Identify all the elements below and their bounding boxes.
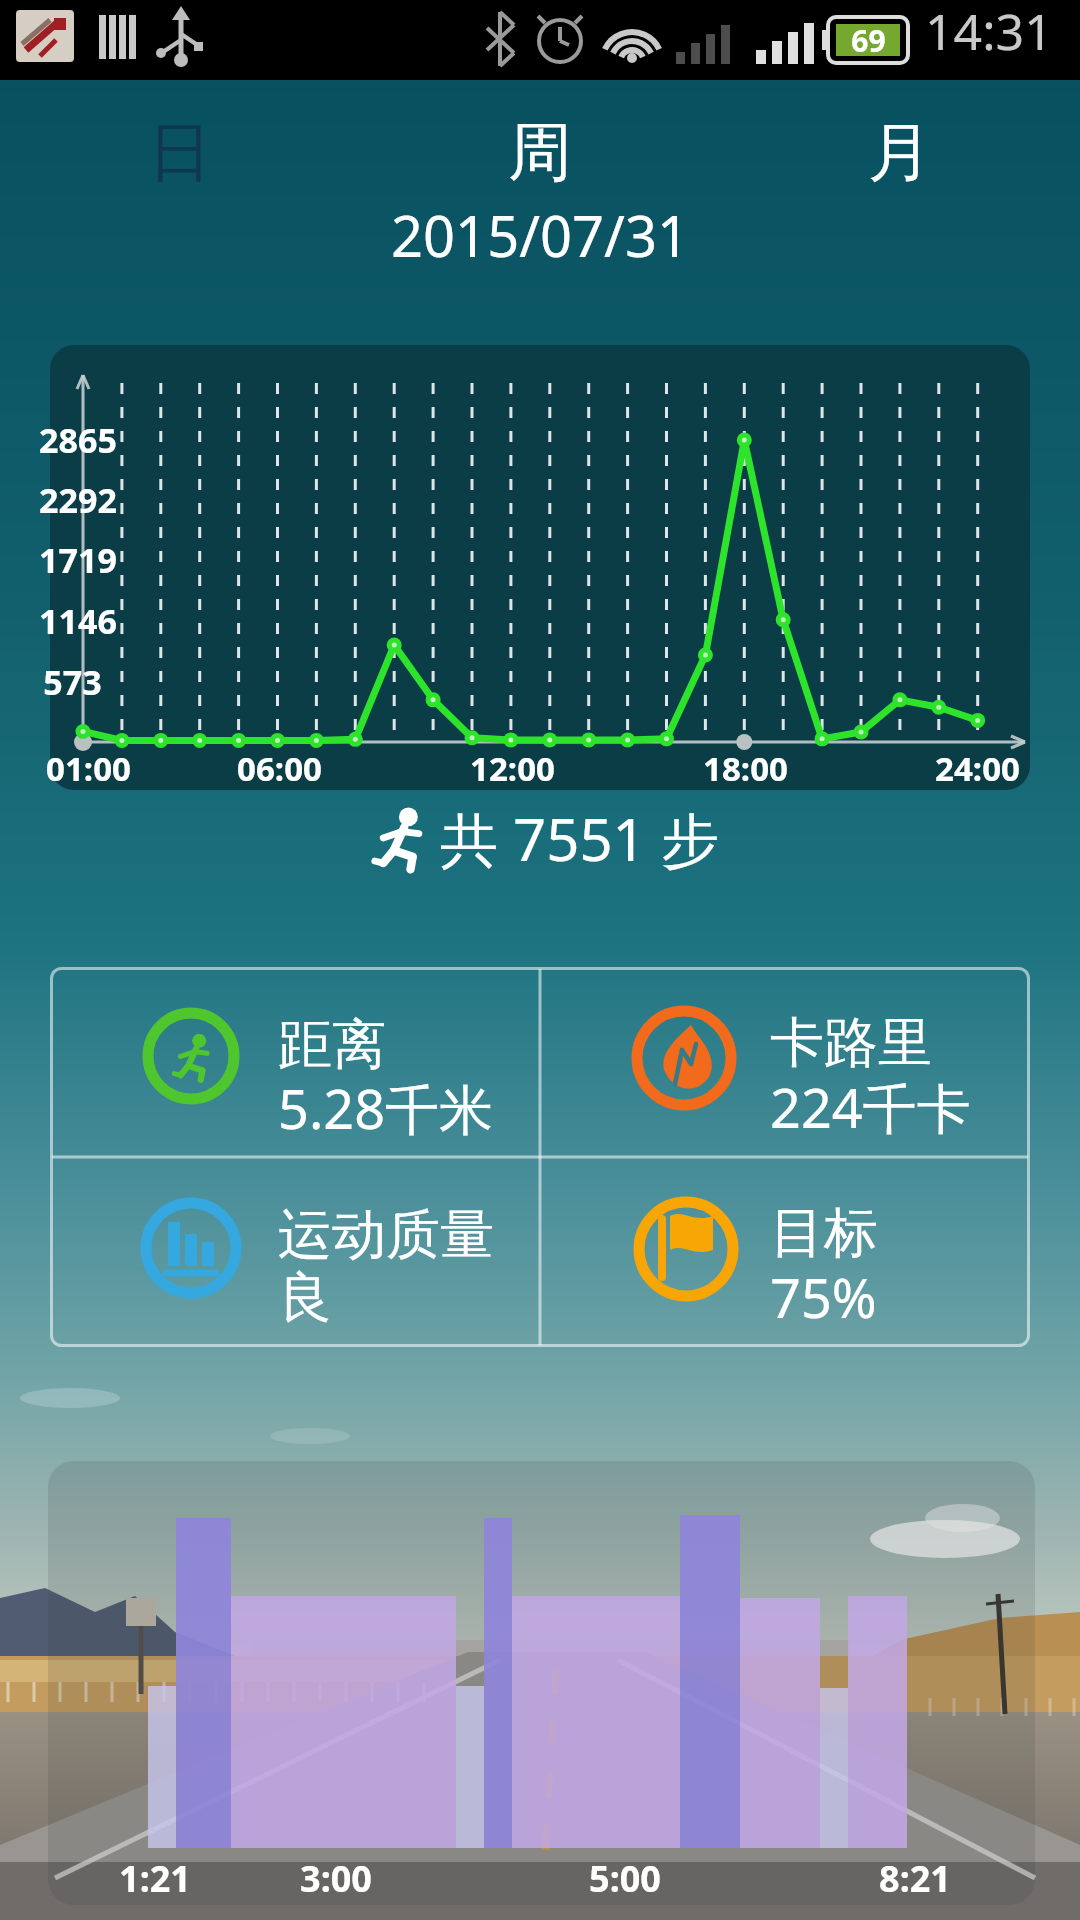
button[interactable]: 目标 (542, 1159, 1028, 1345)
staticText: 良 (278, 1264, 332, 1332)
staticText: 日 (148, 112, 212, 193)
button[interactable]: 卡路里 (542, 969, 1028, 1155)
staticText: 573 (43, 659, 102, 705)
staticText: 01:00 (46, 746, 131, 791)
staticText: 06:00 (237, 746, 322, 791)
staticText: 运动质量 (278, 1201, 494, 1269)
button[interactable]: 周 (420, 105, 660, 200)
staticText: 14:31 (925, 0, 1053, 65)
staticText: 月 (868, 112, 932, 193)
button[interactable]: 运动质量 (52, 1159, 538, 1345)
staticText: 69 (851, 20, 886, 61)
staticText: 2865 (39, 417, 117, 463)
staticText: 距离 (278, 1011, 386, 1079)
staticText: 24:00 (935, 746, 1020, 791)
staticText: 3:00 (300, 1854, 372, 1903)
staticText: 5.28千米 (278, 1071, 494, 1145)
staticText: 5:00 (589, 1854, 661, 1903)
button[interactable]: 69 (0, 0, 1080, 80)
staticText: 1146 (39, 598, 117, 644)
staticText: 18:00 (703, 746, 788, 791)
staticText: 1:21 (119, 1854, 191, 1903)
button[interactable]: 1:21 (48, 1461, 1035, 1905)
staticText: 1719 (39, 537, 117, 583)
staticText: 目标 (770, 1199, 878, 1267)
button[interactable] (50, 345, 1030, 790)
staticText: 周 (508, 112, 572, 193)
staticText: 卡路里 (770, 1009, 932, 1077)
button[interactable]: 月 (780, 105, 1020, 200)
button[interactable]: 距离 (52, 969, 538, 1155)
staticText: 共 7551 步 (440, 799, 719, 878)
staticText: 2292 (39, 477, 117, 523)
staticText: 2015/07/31 (391, 197, 689, 273)
staticText: 12:00 (470, 746, 555, 791)
button[interactable]: 日 (60, 105, 300, 200)
staticText: 75% (770, 1260, 877, 1334)
staticText: 224千卡 (770, 1070, 971, 1144)
staticText: 8:21 (879, 1854, 951, 1903)
